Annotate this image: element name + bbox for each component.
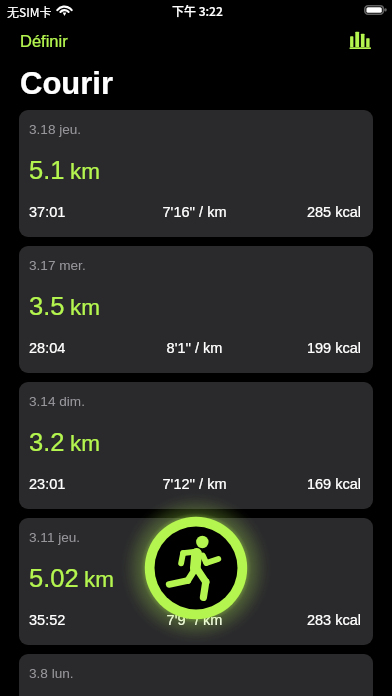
staticText: 199 kcal: [250, 340, 361, 356]
staticText: 7'9'' / km: [139, 612, 250, 628]
staticText: 3.11 jeu.: [29, 530, 81, 545]
staticText: 169 kcal: [250, 476, 361, 492]
staticText: 28:04: [29, 340, 139, 356]
staticText: km: [70, 431, 100, 456]
staticText: 3.5: [29, 292, 65, 320]
button[interactable]: Start a run: [116, 488, 276, 648]
button[interactable]: 3.14 dim.: [19, 382, 373, 509]
staticText: 37:01: [29, 204, 139, 220]
staticText: km: [70, 295, 100, 320]
staticText: 3.17 mer.: [29, 258, 86, 273]
staticText: 8'1'' / km: [139, 340, 250, 356]
staticText: 下午 3:22: [172, 2, 223, 19]
staticText: 283 kcal: [250, 612, 361, 628]
staticText: 7'16'' / km: [139, 204, 250, 220]
button[interactable]: 3.8 lun.: [19, 654, 373, 696]
staticText: 3.8 lun.: [29, 666, 74, 681]
staticText: 无SIM卡: [7, 3, 52, 20]
button[interactable]: Définir: [0, 28, 76, 54]
staticText: 3.14 dim.: [29, 394, 85, 409]
staticText: km: [84, 567, 114, 592]
staticText: 7'12'' / km: [139, 476, 250, 492]
staticText: Courir: [20, 66, 113, 101]
staticText: 23:01: [29, 476, 139, 492]
staticText: 3.18 jeu.: [29, 122, 82, 137]
staticText: 3.2: [29, 428, 65, 456]
button[interactable]: 3.18 jeu.: [19, 110, 373, 237]
button[interactable]: Statistics: [347, 29, 373, 51]
staticText: km: [70, 159, 100, 184]
button[interactable]: 3.11 jeu.: [19, 518, 373, 645]
staticText: 285 kcal: [250, 204, 361, 220]
staticText: 5.1: [29, 156, 65, 184]
staticText: 35:52: [29, 612, 139, 628]
staticText: 5.02: [29, 564, 79, 592]
button[interactable]: 3.17 mer.: [19, 246, 373, 373]
